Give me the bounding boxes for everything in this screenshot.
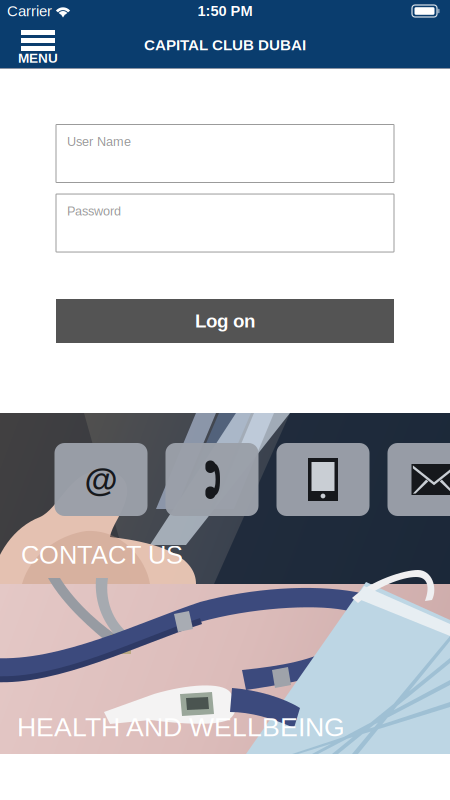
staticText: MENU xyxy=(18,50,58,66)
staticText: @ xyxy=(84,460,117,498)
staticText: User Name xyxy=(67,134,131,149)
staticText: 1:50 PM xyxy=(197,3,252,19)
button[interactable]: @ xyxy=(0,413,450,584)
button[interactable]: Log on xyxy=(56,299,394,343)
staticText: CAPITAL CLUB DUBAI xyxy=(144,36,306,53)
staticText: CONTACT US xyxy=(21,541,183,569)
button[interactable]: Menu xyxy=(0,22,76,68)
staticText: Log on xyxy=(195,310,255,331)
staticText: Carrier xyxy=(7,3,52,19)
staticText: Password xyxy=(67,204,121,218)
staticText: HEALTH AND WELLBEING xyxy=(17,712,345,742)
button[interactable]: HEALTH AND WELLBEING xyxy=(0,584,450,754)
